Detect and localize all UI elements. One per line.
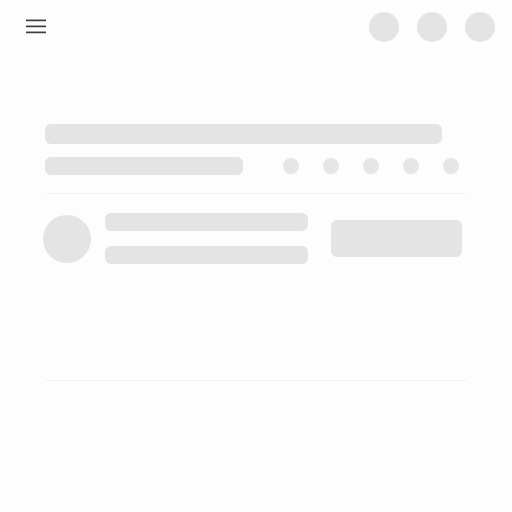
button[interactable]: Action one [369,12,399,42]
button[interactable]: Account [465,12,495,42]
button[interactable]: Action two [417,12,447,42]
button[interactable]: Open navigation menu [18,9,54,45]
